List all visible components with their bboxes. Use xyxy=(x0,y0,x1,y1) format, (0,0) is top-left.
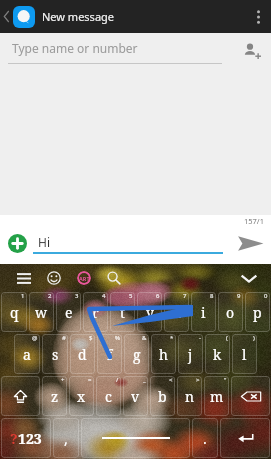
button[interactable]: h xyxy=(151,334,176,374)
staticText: 9 xyxy=(237,292,241,300)
staticText: # xyxy=(62,334,66,342)
button[interactable]: Back xyxy=(0,0,13,33)
button[interactable]: Add contact xyxy=(237,36,265,64)
button[interactable]: More options xyxy=(245,0,271,33)
staticText: o xyxy=(226,303,235,322)
staticText: * xyxy=(170,334,174,342)
staticText: 0 xyxy=(264,292,268,300)
staticText: j xyxy=(188,345,193,364)
staticText: & xyxy=(142,334,147,342)
staticText: $ xyxy=(89,334,93,342)
button[interactable]: x xyxy=(69,376,94,416)
staticText: _ xyxy=(143,376,146,384)
button[interactable]: z xyxy=(42,376,67,416)
button[interactable]: l xyxy=(232,334,257,374)
button[interactable]: s xyxy=(42,334,68,374)
staticText: 3 xyxy=(75,292,79,300)
staticText: 8 xyxy=(210,292,214,300)
button[interactable]: ? xyxy=(1,418,51,458)
staticText: a xyxy=(23,345,31,364)
button[interactable]: Period xyxy=(192,418,218,458)
staticText: p xyxy=(253,303,262,322)
button[interactable]: Comma xyxy=(53,418,79,458)
button[interactable]: Keyboard menu xyxy=(13,267,35,289)
button[interactable]: w xyxy=(29,292,54,332)
button[interactable]: m xyxy=(204,376,229,416)
button[interactable]: Send xyxy=(233,226,267,260)
staticText: t xyxy=(120,303,125,322)
staticText: h xyxy=(159,345,168,364)
staticText: c xyxy=(105,387,112,406)
staticText: z xyxy=(51,387,59,406)
staticText: = xyxy=(88,376,92,384)
button[interactable]: n xyxy=(177,376,202,416)
staticText: b xyxy=(158,387,167,406)
staticText: 7 xyxy=(183,292,187,300)
staticText: e xyxy=(65,303,73,322)
button[interactable]: g xyxy=(124,334,149,374)
staticText: f xyxy=(107,345,113,364)
staticText: k xyxy=(213,345,222,364)
button[interactable]: d xyxy=(70,334,95,374)
button[interactable]: Shift xyxy=(1,376,40,416)
button[interactable]: Add attachment xyxy=(5,231,29,255)
staticText: 157/1 xyxy=(244,216,264,226)
staticText: l xyxy=(242,345,247,364)
staticText: q xyxy=(10,303,19,322)
staticText: < xyxy=(169,376,173,384)
staticText: 6 xyxy=(156,292,160,300)
button[interactable]: f xyxy=(97,334,122,374)
staticText: New message xyxy=(42,9,115,24)
button[interactable]: p xyxy=(245,292,270,332)
button[interactable]: q xyxy=(1,292,27,332)
button[interactable]: i xyxy=(191,292,216,332)
staticText: v xyxy=(131,387,140,406)
staticText: , xyxy=(64,429,68,448)
button[interactable]: o xyxy=(218,292,243,332)
button[interactable]: v xyxy=(123,376,148,416)
staticText: . xyxy=(203,429,207,448)
button[interactable]: Art xyxy=(73,267,95,289)
staticText: % xyxy=(115,334,120,342)
button[interactable]: Search xyxy=(103,267,125,289)
staticText: Hi xyxy=(38,234,50,250)
staticText: ? xyxy=(10,429,18,448)
staticText: d xyxy=(78,345,87,364)
button[interactable]: y xyxy=(137,292,162,332)
button[interactable]: c xyxy=(96,376,121,416)
staticText: / xyxy=(116,376,119,384)
staticText: 1 xyxy=(21,292,25,300)
staticText: ( xyxy=(226,334,228,342)
button[interactable]: u xyxy=(164,292,189,332)
staticText: x xyxy=(77,387,86,406)
staticText: i xyxy=(201,303,206,322)
button[interactable]: Space xyxy=(81,418,190,458)
button[interactable]: r xyxy=(83,292,108,332)
staticText: 2 xyxy=(48,292,52,300)
staticText: @ xyxy=(32,334,38,342)
button[interactable]: k xyxy=(205,334,230,374)
button[interactable]: j xyxy=(178,334,203,374)
staticText: " xyxy=(224,376,227,384)
staticText: - xyxy=(199,334,201,342)
button[interactable]: Hide keyboard xyxy=(236,265,262,291)
staticText: 5 xyxy=(129,292,133,300)
staticText: n xyxy=(185,387,195,406)
staticText: > xyxy=(196,376,200,384)
button[interactable]: t xyxy=(110,292,135,332)
button[interactable]: Backspace xyxy=(231,376,270,416)
staticText: r xyxy=(92,303,99,322)
staticText: + xyxy=(61,376,65,384)
staticText: w xyxy=(35,303,48,322)
staticText: Type name or number xyxy=(12,40,138,56)
button[interactable]: e xyxy=(56,292,81,332)
staticText: s xyxy=(52,345,59,364)
button[interactable]: b xyxy=(150,376,175,416)
staticText: 4 xyxy=(102,292,106,300)
staticText: ) xyxy=(253,334,255,342)
button[interactable]: Enter xyxy=(220,418,270,458)
button[interactable]: a xyxy=(14,334,40,374)
button[interactable]: Emoji xyxy=(43,267,65,289)
staticText: 123 xyxy=(18,429,42,448)
staticText: m xyxy=(210,387,224,406)
